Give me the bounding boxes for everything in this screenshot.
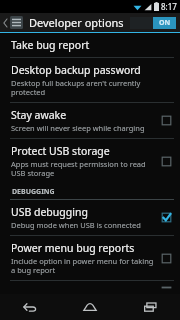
staticText: Take bug report <box>11 38 90 52</box>
button[interactable]: Take bug report <box>0 33 180 57</box>
staticText: Developer options <box>29 15 124 30</box>
staticText: Stay awake <box>11 108 67 122</box>
staticText: Screen will never sleep while charging <box>11 123 145 133</box>
staticText: Include option in power menu for taking … <box>11 256 155 275</box>
staticText: Desktop full backups aren't currently pr… <box>11 78 172 97</box>
button[interactable]: Power menu bug reports <box>0 236 180 280</box>
button[interactable]: Navigate up <box>0 13 25 32</box>
button[interactable]: Desktop backup password <box>0 58 180 102</box>
button[interactable]: Stay awake <box>0 103 180 138</box>
staticText: Protect USB storage <box>11 144 110 158</box>
button[interactable]: Allow mock locations <box>0 281 180 294</box>
button[interactable]: Recent apps <box>120 294 180 320</box>
staticText: DEBUGGING <box>12 187 55 197</box>
staticText: 8:17 <box>161 1 177 12</box>
staticText: USB debugging <box>11 205 88 219</box>
staticText: Desktop backup password <box>11 63 141 77</box>
staticText: Apps must request permission to read USB… <box>11 159 155 178</box>
staticText: Debug mode when USB is connected <box>11 220 141 230</box>
button[interactable]: Developer options on <box>130 17 176 29</box>
button[interactable]: USB debugging <box>0 200 180 235</box>
button[interactable]: Back <box>0 294 60 320</box>
button[interactable]: Protect USB storage <box>0 139 180 183</box>
staticText: Power menu bug reports <box>11 241 135 255</box>
staticText: ON <box>159 18 171 28</box>
button[interactable]: Home <box>60 294 120 320</box>
